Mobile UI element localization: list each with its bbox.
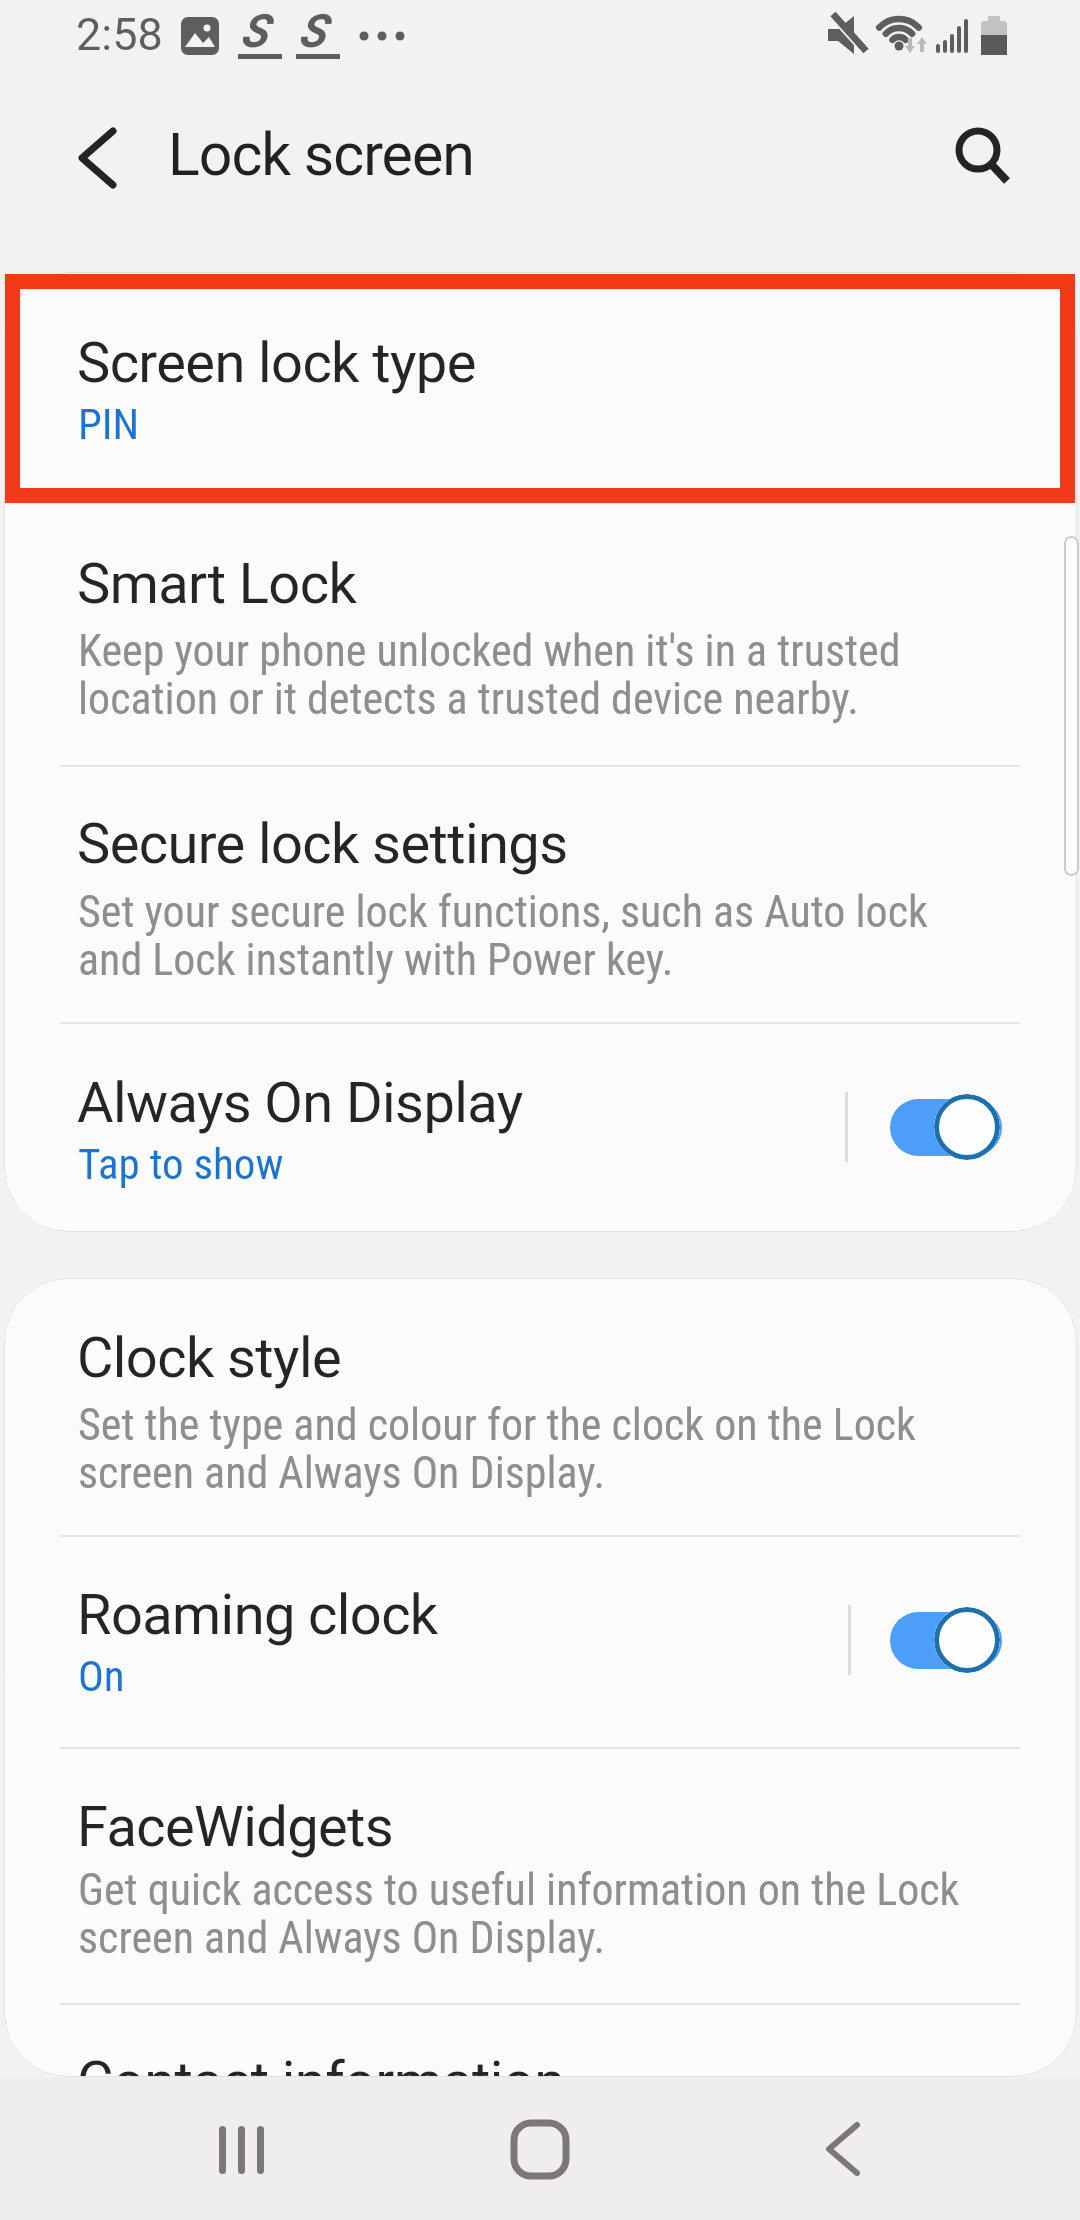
staticText: S [240, 4, 268, 58]
staticText: Roaming clock [77, 1582, 438, 1648]
button[interactable] [942, 114, 1018, 190]
staticText: PIN [78, 399, 140, 449]
button[interactable] [4, 2005, 1077, 2077]
button[interactable] [4, 1749, 1077, 2003]
staticText: S [298, 4, 326, 58]
staticText: Set your secure lock functions, such as … [78, 886, 928, 986]
staticText: Clock style [77, 1325, 342, 1391]
staticText: Smart Lock [77, 551, 357, 617]
button[interactable] [4, 1278, 1077, 1535]
staticText: Tap to show [78, 1139, 284, 1189]
staticText: Set the type and colour for the clock on… [78, 1399, 916, 1499]
button[interactable] [4, 510, 1077, 765]
button[interactable] [890, 1607, 1002, 1673]
button[interactable] [4, 288, 1077, 510]
staticText: Lock screen [168, 120, 474, 189]
staticText: Screen lock type [77, 330, 476, 396]
staticText: Get quick access to useful information o… [78, 1864, 960, 1964]
staticText: Secure lock settings [77, 811, 568, 877]
staticText: FaceWidgets [77, 1794, 394, 1860]
button[interactable] [486, 2096, 594, 2204]
button[interactable] [58, 120, 134, 196]
staticText: On [78, 1651, 125, 1701]
button[interactable] [4, 767, 1077, 1022]
staticText: 2:58 [76, 8, 163, 61]
button[interactable] [789, 2096, 897, 2204]
button[interactable] [4, 1024, 1077, 1232]
staticText: Contact information [77, 2049, 565, 2077]
button[interactable] [185, 2096, 293, 2204]
button[interactable] [890, 1094, 1002, 1160]
button[interactable] [4, 1537, 1077, 1747]
staticText: Keep your phone unlocked when it's in a … [78, 625, 901, 725]
staticText: Always On Display [77, 1070, 523, 1136]
